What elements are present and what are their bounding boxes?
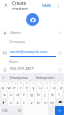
staticText: Create contact	[12, 0, 40, 10]
button[interactable]: Enter	[55, 106, 64, 115]
button[interactable]: More suggestions	[58, 75, 63, 80]
button[interactable]: More options	[54, 1, 62, 9]
staticText: SAVE	[42, 3, 52, 8]
staticText: 5	[26, 82, 28, 85]
staticText: k	[51, 92, 54, 97]
staticText: 9	[54, 82, 56, 85]
button[interactable]: 9	[51, 82, 57, 90]
button[interactable]: n	[42, 98, 48, 106]
button[interactable]: Expand	[58, 31, 62, 35]
button[interactable]: Expand	[58, 51, 62, 55]
button[interactable]: 0	[58, 82, 64, 90]
button[interactable]: Shift	[0, 98, 7, 106]
button[interactable]: z	[8, 98, 13, 106]
staticText: 4	[20, 82, 22, 85]
button[interactable]: Close	[2, 1, 10, 9]
staticText: s	[10, 92, 12, 97]
button[interactable]: s	[8, 90, 13, 98]
staticText: Enterprises	[10, 75, 29, 80]
staticText: 7	[40, 82, 42, 85]
staticText: w	[7, 85, 11, 90]
button[interactable]: Backspace	[56, 98, 64, 106]
staticText: l	[58, 92, 60, 97]
button[interactable]: Company	[0, 38, 64, 47]
staticText: Name	[10, 30, 21, 35]
staticText: p	[60, 85, 63, 90]
button[interactable]: Emoji	[17, 106, 22, 115]
button[interactable]: g	[28, 90, 34, 98]
button[interactable]: x	[14, 98, 20, 106]
staticText: ?123	[2, 109, 8, 113]
staticText: 3	[14, 82, 16, 85]
staticText: h	[37, 92, 40, 97]
button[interactable]: c	[21, 98, 27, 106]
staticText: m	[50, 100, 54, 105]
button[interactable]: m	[49, 98, 55, 106]
button[interactable]: k	[49, 90, 55, 98]
staticText: g	[30, 92, 33, 97]
staticText: Company	[9, 39, 26, 44]
staticText: name@example.com	[10, 49, 48, 54]
staticText: Enterprise's	[36, 75, 55, 80]
staticText: 0	[61, 82, 63, 85]
staticText: i	[46, 85, 48, 90]
staticText: y	[32, 85, 35, 90]
staticText: u	[39, 85, 42, 90]
other: Email	[2, 50, 8, 56]
button[interactable]: f	[21, 90, 27, 98]
staticText: 2	[8, 82, 10, 85]
button[interactable]: d	[14, 90, 20, 98]
staticText: n	[44, 100, 47, 105]
button[interactable]: a	[2, 90, 7, 98]
button[interactable]: Home	[0, 58, 64, 65]
staticText: Home	[9, 60, 19, 64]
staticText: z	[10, 100, 12, 105]
other: Name	[2, 30, 8, 36]
staticText: v	[30, 100, 33, 105]
staticText: 6	[33, 82, 35, 85]
staticText: x	[16, 100, 19, 105]
button[interactable]: Expand	[58, 68, 62, 72]
staticText: a	[3, 92, 6, 97]
staticText: t	[26, 85, 28, 90]
staticText: b	[37, 100, 40, 105]
button[interactable]: ?123	[0, 106, 10, 115]
button[interactable]: Enterprises	[6, 75, 32, 80]
button[interactable]: b	[35, 98, 41, 106]
staticText: 555 019 2837	[10, 66, 34, 71]
button[interactable]: ,	[11, 106, 16, 115]
staticText: d	[16, 92, 19, 97]
other: Phone	[2, 67, 8, 73]
button[interactable]: 3	[12, 82, 17, 90]
staticText: f	[23, 92, 25, 97]
staticText: ,	[13, 108, 14, 113]
button[interactable]: l	[56, 90, 62, 98]
button[interactable]: Name	[0, 28, 64, 38]
staticText: o	[53, 85, 56, 90]
button[interactable]: Email	[0, 48, 64, 58]
button[interactable]: 2	[6, 82, 11, 90]
button[interactable]: h	[35, 90, 41, 98]
button[interactable]: Phone	[0, 66, 64, 73]
staticText: .	[51, 108, 52, 113]
button[interactable]: 6	[30, 82, 36, 90]
button[interactable]: 8	[44, 82, 50, 90]
staticText: 8	[46, 82, 48, 85]
staticText: e	[13, 85, 16, 90]
staticText: q	[1, 85, 4, 90]
staticText: c	[23, 100, 25, 105]
button[interactable]: j	[42, 90, 48, 98]
button[interactable]: SAVE	[40, 2, 54, 9]
button[interactable]: 4	[18, 82, 23, 90]
button[interactable]: v	[28, 98, 34, 106]
button[interactable]: 5	[24, 82, 29, 90]
button[interactable]: Add photo	[26, 13, 39, 26]
button[interactable]: Enterprise's	[32, 75, 58, 80]
button[interactable]: .	[49, 106, 54, 115]
button[interactable]: Voice input	[1, 75, 6, 80]
button[interactable]: 7	[37, 82, 43, 90]
button[interactable]: 1	[0, 82, 5, 90]
staticText: r	[20, 85, 22, 90]
staticText: 1	[2, 82, 4, 85]
